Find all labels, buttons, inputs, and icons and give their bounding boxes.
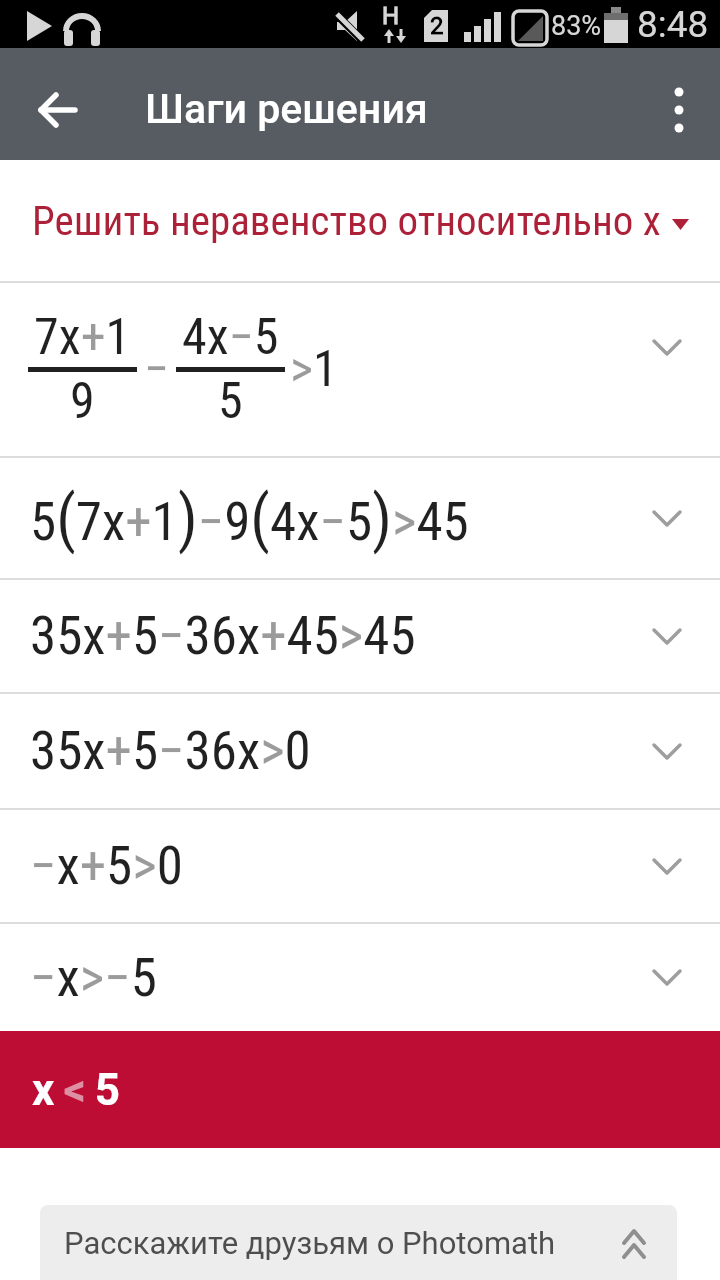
staticText: 5 xyxy=(218,372,243,431)
staticText: 35x+5−36x>0 xyxy=(30,720,311,782)
staticText: 83% xyxy=(551,10,602,42)
staticText: x < 5 xyxy=(32,1064,121,1116)
staticText: 7x+1 xyxy=(34,308,131,367)
staticText: −x>−5 xyxy=(30,947,157,1009)
button[interactable]: Решить неравенство относительно x xyxy=(0,160,720,281)
button[interactable]: Расскажите друзьям о Photomath xyxy=(40,1205,677,1280)
button[interactable]: 35x+5−36x+45>45 xyxy=(0,580,720,692)
staticText: −x+5>0 xyxy=(30,835,183,897)
button[interactable]: −x+5>0 xyxy=(0,810,720,922)
button[interactable]: −x>−5 xyxy=(0,924,720,1031)
staticText: 8:48 xyxy=(637,3,709,46)
button[interactable] xyxy=(30,82,86,138)
staticText: 4x−5 xyxy=(182,308,279,367)
staticText: Расскажите друзьям о Photomath xyxy=(64,1225,556,1261)
staticText: − xyxy=(144,340,169,399)
staticText: 5(7x+1)−9(4x−5)>45 xyxy=(30,482,469,555)
staticText: Решить неравенство относительно x xyxy=(32,197,661,245)
button[interactable]: 35x+5−36x>0 xyxy=(0,694,720,808)
staticText: 35x+5−36x+45>45 xyxy=(30,605,416,667)
button[interactable]: 5(7x+1)−9(4x−5)>45 xyxy=(0,458,720,578)
staticText: >1 xyxy=(290,340,338,399)
button[interactable] xyxy=(653,78,705,142)
staticText: 9 xyxy=(70,372,95,431)
staticText: Шаги решения xyxy=(145,85,428,133)
staticText: H xyxy=(382,2,400,30)
button[interactable]: 7x+1 xyxy=(0,283,720,456)
staticText: 2 xyxy=(430,12,444,40)
button[interactable]: x < 5 xyxy=(0,1031,720,1148)
